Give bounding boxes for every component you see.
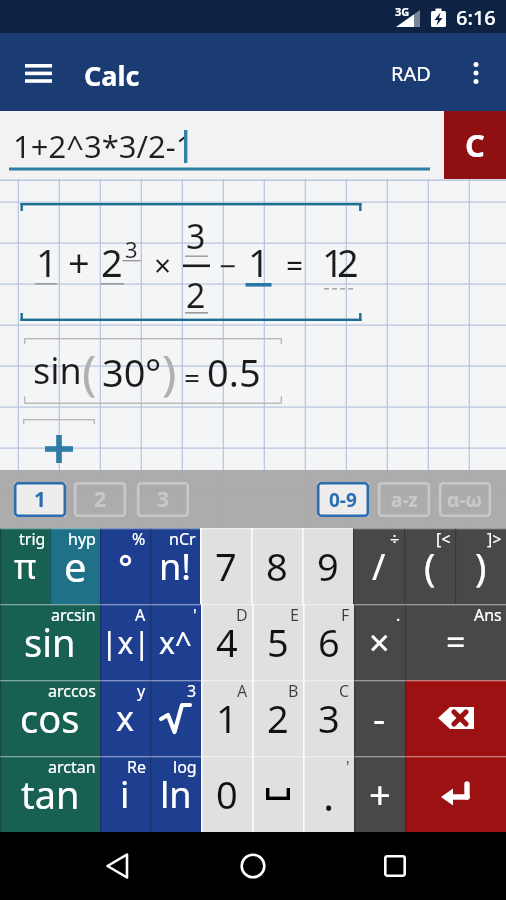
button[interactable]: 3 [150,680,201,756]
button[interactable]: Re [100,756,150,832]
staticText: F [341,604,350,626]
staticText: Ans [474,604,502,626]
button[interactable] [14,51,64,96]
button[interactable]: 9 [302,528,353,604]
staticText: 2 [101,236,123,288]
staticText: Calc [84,57,140,94]
staticText: log [173,756,197,778]
staticText: C [465,124,485,166]
button[interactable]: + [354,756,405,832]
staticText: 1 [322,236,344,288]
button[interactable]: arctan [0,756,100,832]
staticText: - [373,692,386,744]
staticText: ]> [487,528,502,550]
button[interactable]: 8 [251,528,302,604]
staticText: 6:16 [456,4,496,31]
staticText: 6 [318,616,340,668]
button[interactable]: [< [404,528,455,604]
staticText: E [290,604,299,626]
staticText: 9 [317,540,339,592]
staticText: / [372,542,386,591]
button[interactable]: y [100,680,150,756]
button[interactable]: 2 [74,482,126,517]
button[interactable]: A [100,604,150,680]
button[interactable]: % [100,528,150,604]
button[interactable]: log [150,756,201,832]
button[interactable]: trig [0,528,50,604]
button[interactable] [458,49,494,97]
button[interactable]: RAD [382,55,440,91]
staticText: 1+2^3*3/2-1 [13,125,194,167]
button[interactable]: Ans [405,604,506,680]
staticText: x^ [159,622,193,663]
staticText: A [135,604,146,626]
button[interactable]: 3 [137,482,189,517]
staticText: a-z [391,487,418,513]
staticText: 1 [36,236,58,288]
button[interactable]: arccos [0,680,100,756]
button[interactable]: 7 [200,528,251,604]
button[interactable]: A [201,680,252,756]
staticText: arcsin [51,604,96,626]
button[interactable]: 0 [201,756,252,832]
staticText: − [219,245,237,286]
button[interactable]: nCr [150,528,200,604]
staticText: 3 [157,485,170,514]
staticText: [< [436,528,451,550]
staticText: 2 [94,485,107,514]
staticText: = [286,245,304,286]
staticText: A [237,680,248,702]
button[interactable] [365,832,425,900]
staticText: n! [159,542,191,591]
button[interactable]: α-ω [439,482,491,517]
staticText: 3 [318,692,340,744]
staticText: ( [424,540,436,592]
staticText: 4 [216,616,238,668]
staticText: 1 [34,485,47,514]
button[interactable]: hyp [50,528,100,604]
button[interactable]: arcsin [0,604,100,680]
staticText: arccos [48,680,96,702]
staticText: . [396,604,401,626]
staticText: 3 [186,213,206,259]
staticText: + [68,236,90,288]
button[interactable]: ' [303,756,354,832]
button[interactable] [87,832,147,900]
staticText: % [132,528,146,550]
button[interactable]: C [303,680,354,756]
button[interactable]: ]> [455,528,506,604]
staticText: + [369,768,391,820]
button[interactable]: F [303,604,354,680]
staticText: B [288,680,299,702]
staticText: i [120,770,130,819]
staticText: 7 [215,540,237,592]
staticText: sin [24,616,76,668]
staticText: π [14,543,37,589]
button[interactable] [37,427,81,471]
button[interactable]: ÷ [353,528,404,604]
staticText: = [184,358,201,396]
button[interactable]: B [252,680,303,756]
staticText: ' [346,756,350,778]
button[interactable]: ' [150,604,201,680]
button[interactable]: 0-9 [317,482,369,517]
button[interactable]: 1 [14,482,66,517]
button[interactable]: a-z [378,482,430,517]
button[interactable]: C [444,111,506,179]
button[interactable] [252,756,303,832]
button[interactable]: E [252,604,303,680]
staticText: 3 [187,680,197,702]
staticText: 3G [395,4,410,19]
staticText: 2 [267,692,289,744]
button[interactable] [405,756,506,832]
button[interactable]: D [201,604,252,680]
staticText: ) [475,540,487,592]
button[interactable] [405,680,506,756]
button[interactable] [223,832,283,900]
staticText: 2 [337,236,359,288]
staticText: e [64,539,87,593]
button[interactable]: - [354,680,405,756]
staticText: 0-9 [329,487,357,513]
button[interactable]: . [354,604,405,680]
staticText: RAD [391,60,431,87]
